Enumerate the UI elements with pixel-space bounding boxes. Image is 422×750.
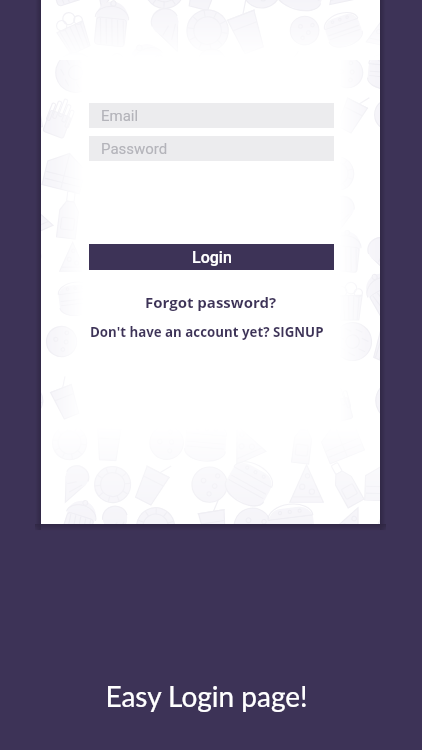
staticText: Login — [192, 248, 232, 267]
button[interactable]: Forgot password? — [41, 292, 380, 312]
button[interactable]: Email — [89, 103, 334, 128]
staticText: Email — [101, 107, 139, 125]
staticText: Password — [101, 140, 168, 158]
button[interactable]: Login — [89, 244, 334, 270]
staticText: Forgot password? — [145, 292, 277, 312]
button[interactable]: Don't have an account yet? SIGNUP — [41, 323, 376, 341]
staticText: Easy Login page! — [105, 679, 308, 713]
staticText: Don't have an account yet? SIGNUP — [90, 323, 324, 341]
button[interactable]: Password — [89, 136, 334, 161]
